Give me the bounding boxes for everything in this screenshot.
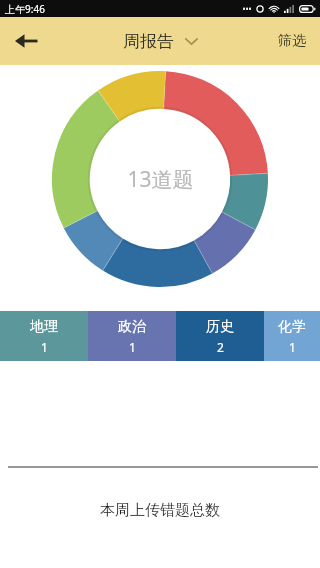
staticText: 周报告 xyxy=(123,31,174,52)
staticText: 政治 xyxy=(118,318,146,336)
staticText: 地理 xyxy=(30,318,58,336)
button[interactable]: Back xyxy=(0,17,54,65)
button[interactable]: 地理 xyxy=(0,311,88,361)
button[interactable]: 周报告 xyxy=(115,26,206,57)
staticText: 筛选 xyxy=(278,32,306,50)
staticText: 1 xyxy=(41,339,48,355)
staticText: 历史 xyxy=(206,318,234,336)
staticText: 2 xyxy=(217,339,224,355)
staticText: 1 xyxy=(289,339,296,355)
staticText: 1 xyxy=(129,339,136,355)
staticText: 本周上传错题总数 xyxy=(100,501,220,520)
button[interactable]: 筛选 xyxy=(264,17,320,65)
button[interactable]: 化学 xyxy=(264,311,320,361)
button[interactable]: 政治 xyxy=(88,311,176,361)
button[interactable]: 历史 xyxy=(176,311,264,361)
staticText: 13道题 xyxy=(127,165,194,194)
staticText: ••• xyxy=(242,3,252,14)
staticText: 化学 xyxy=(278,318,306,336)
staticText: 上午9:46 xyxy=(5,2,45,16)
